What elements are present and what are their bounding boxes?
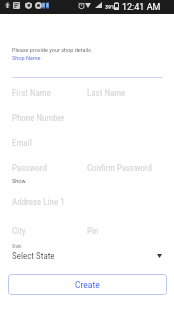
staticText: Phone Number	[12, 113, 65, 124]
staticText: Email	[12, 138, 32, 149]
button[interactable]: City	[12, 226, 87, 237]
button[interactable]: Shop Name	[12, 55, 41, 61]
button[interactable]: Show	[12, 178, 26, 184]
other: Select state dropdown	[157, 254, 162, 258]
staticText: Password	[12, 163, 47, 174]
button[interactable]: Email	[12, 138, 87, 149]
button[interactable]: Last Name	[87, 88, 162, 99]
staticText: Confirm Password	[87, 163, 152, 174]
button[interactable]: First Name	[12, 88, 87, 99]
staticText: City	[12, 226, 26, 237]
staticText: State	[12, 244, 22, 249]
staticText: First Name	[12, 88, 51, 99]
button[interactable]: Create	[8, 274, 167, 295]
staticText: 39%	[105, 3, 115, 10]
staticText: 12:41 AM	[122, 2, 161, 13]
staticText: Address Line 1	[12, 197, 65, 208]
staticText: Pin	[87, 226, 99, 237]
button[interactable]: Pin	[87, 226, 162, 237]
staticText: Select State	[12, 251, 55, 262]
button[interactable]: Confirm Password	[87, 163, 162, 174]
staticText: Last Name	[87, 88, 126, 99]
button[interactable]: Address Line 1	[12, 197, 87, 208]
staticText: Create	[75, 280, 100, 290]
staticText: Please provide your shop details.	[12, 47, 93, 53]
button[interactable]: Phone Number	[12, 113, 87, 124]
button[interactable]: Password	[12, 163, 87, 174]
button[interactable]: Select State	[12, 250, 162, 262]
